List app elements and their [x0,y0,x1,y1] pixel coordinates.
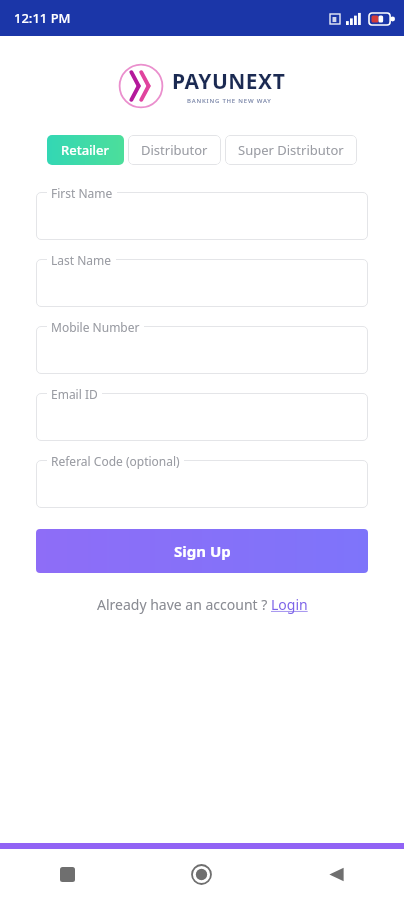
staticText: BANKING THE NEW WAY [187,97,272,105]
staticText: 12:11 PM [14,9,71,27]
button[interactable]: Retailer [47,135,124,165]
button[interactable]: Login [271,595,308,614]
button[interactable]: Email ID [36,393,368,441]
staticText: Last Name [51,252,112,268]
staticText: Sign Up [174,541,231,561]
button[interactable]: Super Distributor [225,135,357,165]
staticText: Login [271,595,308,614]
button[interactable]: Sign Up [36,529,368,573]
staticText: Mobile Number [51,319,140,335]
button[interactable]: Mobile Number [36,326,368,374]
staticText: Distributor [141,141,208,159]
button[interactable]: Distributor [128,135,221,165]
button[interactable]: Last Name [36,259,368,307]
staticText: Retailer [61,141,110,159]
staticText: Super Distributor [238,141,344,159]
staticText: Referal Code (optional) [51,453,180,469]
staticText: Email ID [51,386,98,402]
button[interactable]: Recent apps [0,849,134,900]
staticText: Already have an account ? [97,595,271,614]
staticText: First Name [51,185,113,201]
button[interactable]: Back [269,849,404,900]
button[interactable]: First Name [36,192,368,240]
button[interactable]: Referal Code (optional) [36,460,368,508]
button[interactable]: Home [134,849,269,900]
staticText: PAYUNEXT [172,67,286,96]
